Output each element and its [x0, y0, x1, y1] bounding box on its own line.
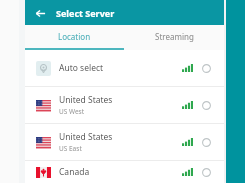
button[interactable]: Canada	[25, 161, 224, 183]
staticText: United States	[59, 94, 113, 106]
staticText: Select Server	[56, 7, 115, 19]
button[interactable]: United States	[25, 124, 224, 160]
button[interactable]: Auto select	[25, 50, 224, 86]
button[interactable]: Location	[25, 25, 124, 48]
button[interactable]: Select server	[200, 62, 213, 75]
button[interactable]: Select server	[200, 166, 213, 179]
staticText: Streaming	[155, 31, 194, 42]
staticText: US West	[59, 107, 85, 116]
staticText: US East	[59, 144, 82, 153]
button[interactable]: United States	[25, 87, 224, 123]
button[interactable]: Select server	[200, 99, 213, 112]
staticText: Auto select	[59, 62, 104, 74]
staticText: Location	[58, 31, 91, 42]
button[interactable]: Back	[30, 3, 50, 23]
staticText: United States	[59, 131, 113, 143]
button[interactable]: Streaming	[124, 25, 224, 48]
button[interactable]: Select server	[200, 136, 213, 149]
staticText: Canada	[59, 166, 90, 178]
